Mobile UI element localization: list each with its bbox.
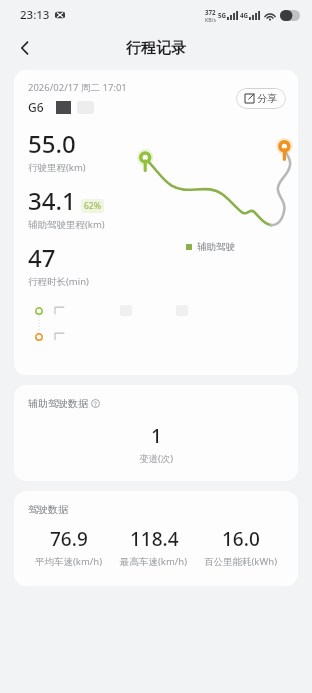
staticText: 372 bbox=[205, 8, 216, 16]
staticText: 最高车速(km/h) bbox=[120, 555, 188, 568]
staticText: 118.4 bbox=[130, 526, 179, 552]
staticText: 辅助驾驶 bbox=[197, 241, 235, 253]
staticText: KB/s bbox=[205, 16, 216, 23]
staticText: 百公里能耗(kWh) bbox=[204, 555, 277, 568]
staticText: 34.1 bbox=[28, 184, 76, 217]
staticText: 1 bbox=[151, 423, 162, 449]
staticText: 62% bbox=[84, 200, 101, 212]
staticText: 驾驶数据 bbox=[28, 503, 68, 516]
staticText: 辅助驾驶数据 bbox=[28, 397, 88, 410]
staticText: 行程记录 bbox=[126, 39, 186, 58]
staticText: 行驶里程(km) bbox=[28, 161, 86, 174]
staticText: 辅助驾驶里程(km) bbox=[28, 218, 105, 231]
staticText: 47 bbox=[28, 241, 56, 274]
button[interactable]: 分享 bbox=[236, 88, 286, 109]
staticText: 16.0 bbox=[222, 526, 260, 552]
staticText: G6 bbox=[28, 99, 44, 115]
staticText: 23:13 bbox=[20, 7, 50, 23]
staticText: 行程时长(min) bbox=[28, 275, 89, 288]
staticText: 分享 bbox=[257, 92, 277, 105]
staticText: 4G bbox=[240, 11, 249, 19]
button[interactable]: Back bbox=[8, 31, 42, 65]
staticText: 5G bbox=[218, 11, 227, 19]
staticText: 平均车速(km/h) bbox=[35, 555, 103, 568]
staticText: 55.0 bbox=[28, 127, 76, 160]
staticText: 76.9 bbox=[50, 526, 88, 552]
staticText: 变道(次) bbox=[139, 452, 174, 465]
staticText: 2026/02/17 周二 17:01 bbox=[28, 81, 127, 94]
